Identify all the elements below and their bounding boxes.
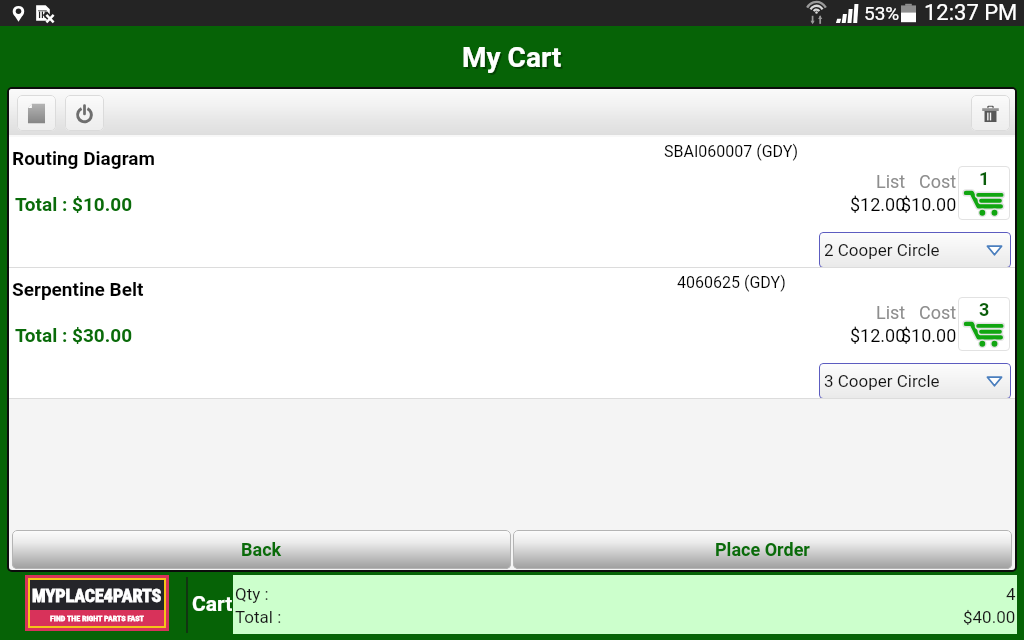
staticText: Total : $30.00 <box>15 324 133 346</box>
button[interactable]: Add to cart <box>958 297 1010 351</box>
button[interactable]: Back <box>12 530 511 569</box>
staticText: 3 Cooper Circle <box>824 371 940 391</box>
staticText: My Cart <box>462 41 562 74</box>
staticText: SBAI060007 (GDY) <box>664 142 799 161</box>
staticText: MYPLACE4PARTS <box>32 585 162 606</box>
button[interactable]: 2 Cooper Circle <box>819 232 1011 268</box>
button[interactable]: Place Order <box>513 530 1012 569</box>
staticText: 4060625 (GDY) <box>677 273 786 292</box>
staticText: Total : $10.00 <box>15 193 133 215</box>
staticText: Serpentine Belt <box>12 278 144 300</box>
staticText: Cost <box>919 302 957 323</box>
staticText: Qty : <box>235 584 269 604</box>
staticText: FIND THE RIGHT PARTS FAST <box>50 614 144 623</box>
staticText: My Cart <box>464 43 564 76</box>
staticText: Cart <box>192 592 233 617</box>
staticText: 4 <box>1006 584 1016 604</box>
staticText: Routing Diagram <box>12 147 155 169</box>
staticText: 12:37 PM <box>924 0 1018 26</box>
staticText: List <box>876 302 906 323</box>
button[interactable]: Add to cart <box>958 166 1010 220</box>
staticText: 1 <box>979 168 990 189</box>
staticText: Place Order <box>715 539 810 560</box>
staticText: $12.00 <box>850 194 906 215</box>
staticText: Back <box>241 539 282 560</box>
button[interactable]: Delete <box>971 95 1010 131</box>
button[interactable]: Notes <box>17 95 56 131</box>
staticText: 3 <box>979 299 990 320</box>
staticText: Total : <box>235 607 282 627</box>
staticText: 2 Cooper Circle <box>824 240 940 260</box>
staticText: List <box>876 171 906 192</box>
staticText: $10.00 <box>901 325 957 346</box>
button[interactable]: Power <box>65 95 104 131</box>
button[interactable]: 3 Cooper Circle <box>819 363 1011 399</box>
staticText: $12.00 <box>850 325 906 346</box>
staticText: $10.00 <box>901 194 957 215</box>
staticText: $40.00 <box>963 607 1016 627</box>
staticText: 53% <box>864 2 900 24</box>
staticText: Cost <box>919 171 957 192</box>
